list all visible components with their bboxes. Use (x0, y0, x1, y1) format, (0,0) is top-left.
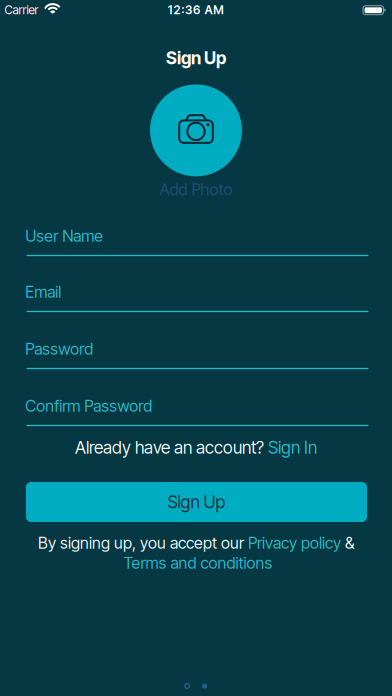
button[interactable]: Sign In (268, 437, 317, 458)
button[interactable]: Add Photo (98, 82, 294, 202)
staticText: Terms and conditions (123, 554, 272, 572)
staticText: Sign Up (166, 48, 226, 68)
button[interactable]: Password (25, 336, 367, 362)
staticText: Add Photo (159, 180, 232, 199)
staticText: & (341, 534, 354, 552)
button[interactable]: User Name (25, 223, 367, 249)
staticText: Sign Up (167, 492, 225, 512)
staticText: Confirm Password (25, 397, 152, 415)
button[interactable]: Page 2 of 2 (185, 683, 207, 689)
button[interactable]: Email (25, 279, 367, 305)
button[interactable]: Privacy policy (248, 534, 341, 552)
staticText: Email (25, 283, 61, 301)
button[interactable]: Terms and conditions (123, 554, 272, 572)
staticText: Already have an account? (75, 437, 268, 458)
staticText: By signing up, you accept our (38, 534, 248, 552)
staticText: 12:36 AM (168, 3, 223, 17)
staticText: Sign In (268, 437, 317, 458)
staticText: Privacy policy (248, 534, 341, 552)
staticText: User Name (25, 227, 103, 245)
button[interactable]: Sign Up (26, 482, 367, 522)
staticText: Password (25, 340, 93, 358)
staticText: Carrier (4, 3, 38, 17)
button[interactable]: Confirm Password (25, 393, 367, 419)
